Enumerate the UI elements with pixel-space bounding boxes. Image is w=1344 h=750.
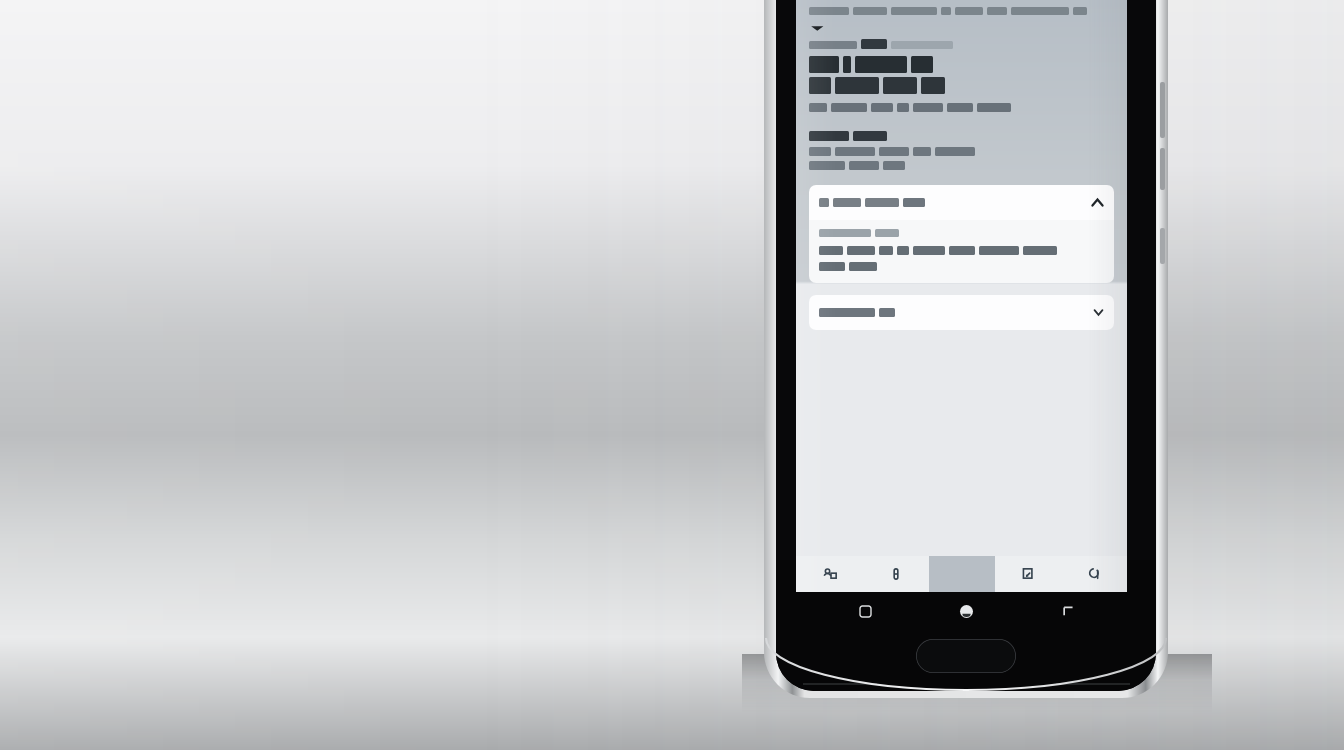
button[interactable] <box>809 295 1114 330</box>
button[interactable]: Back <box>1055 598 1081 624</box>
button[interactable]: Home <box>953 598 979 624</box>
button[interactable]: Saved <box>863 556 929 592</box>
button[interactable]: Search <box>1061 556 1127 592</box>
button[interactable] <box>809 185 1114 220</box>
button[interactable]: Community <box>796 556 863 592</box>
button[interactable]: Sign in <box>995 556 1061 592</box>
button[interactable]: Home button <box>916 639 1016 673</box>
button[interactable]: Expand section <box>809 23 827 33</box>
button[interactable]: Recent apps <box>852 598 878 624</box>
